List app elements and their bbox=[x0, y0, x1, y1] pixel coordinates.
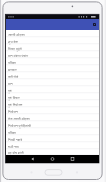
staticText: पत्रिका bbox=[8, 60, 16, 64]
button[interactable]: सणवार bbox=[6, 65, 99, 72]
button[interactable]: नियोजन पुरोहितांची bbox=[6, 121, 99, 128]
staticText: गुरु विचार bbox=[8, 95, 20, 99]
button[interactable]: Recent apps bbox=[66, 155, 79, 163]
button[interactable]: शुभ वेळ bbox=[6, 37, 99, 44]
staticText: मान bbox=[8, 81, 13, 85]
button[interactable]: नियोजन bbox=[6, 107, 99, 114]
staticText: सणवार bbox=[8, 67, 17, 71]
staticText: मान मंत्रणा पंचांग bbox=[8, 53, 29, 57]
button[interactable]: पत्रिका bbox=[6, 58, 99, 65]
button[interactable]: तेज आरती सोहळा bbox=[6, 114, 99, 121]
button[interactable]: मान bbox=[6, 79, 99, 86]
staticText: निवडी नक्षत्रे bbox=[8, 137, 23, 141]
staticText: गुरु नियोजन bbox=[8, 102, 23, 106]
staticText: विवाह मुहूर्त bbox=[8, 46, 22, 50]
button[interactable]: पत्रिका bbox=[6, 128, 99, 135]
button[interactable]: मान मंत्रणा पंचांग bbox=[6, 51, 99, 58]
staticText: नियोजन पुरोहितांची bbox=[8, 123, 31, 127]
staticText: शुभ वेळ bbox=[8, 39, 18, 43]
staticText: ग्रह दोष शांती bbox=[8, 150, 24, 154]
button[interactable]: गुरु नियोजन bbox=[6, 100, 99, 107]
staticText: गुरु bbox=[8, 88, 12, 92]
button[interactable]: Back bbox=[26, 155, 39, 163]
staticText: करी रोजे bbox=[8, 74, 19, 78]
button[interactable]: ग्रह दोष शांती bbox=[6, 149, 99, 155]
button[interactable]: गुरु bbox=[6, 86, 99, 93]
button[interactable]: करी रोजे bbox=[6, 72, 99, 79]
staticText: राशी नाव bbox=[8, 144, 19, 148]
button[interactable]: आरती सोहळा bbox=[6, 30, 99, 37]
staticText: पत्रिका bbox=[8, 130, 16, 134]
staticText: तेज आरती सोहळा bbox=[8, 116, 30, 120]
button[interactable]: विवाह मुहूर्त bbox=[6, 44, 99, 51]
button[interactable]: गुरु विचार bbox=[6, 93, 99, 100]
button[interactable]: निवडी नक्षत्रे bbox=[6, 135, 99, 142]
button[interactable]: राशी नाव bbox=[6, 142, 99, 149]
staticText: नियोजन bbox=[8, 109, 18, 113]
button[interactable]: Home bbox=[46, 155, 59, 163]
staticText: आरती सोहळा bbox=[8, 32, 25, 36]
button[interactable]: Overflow menu bbox=[93, 23, 96, 26]
